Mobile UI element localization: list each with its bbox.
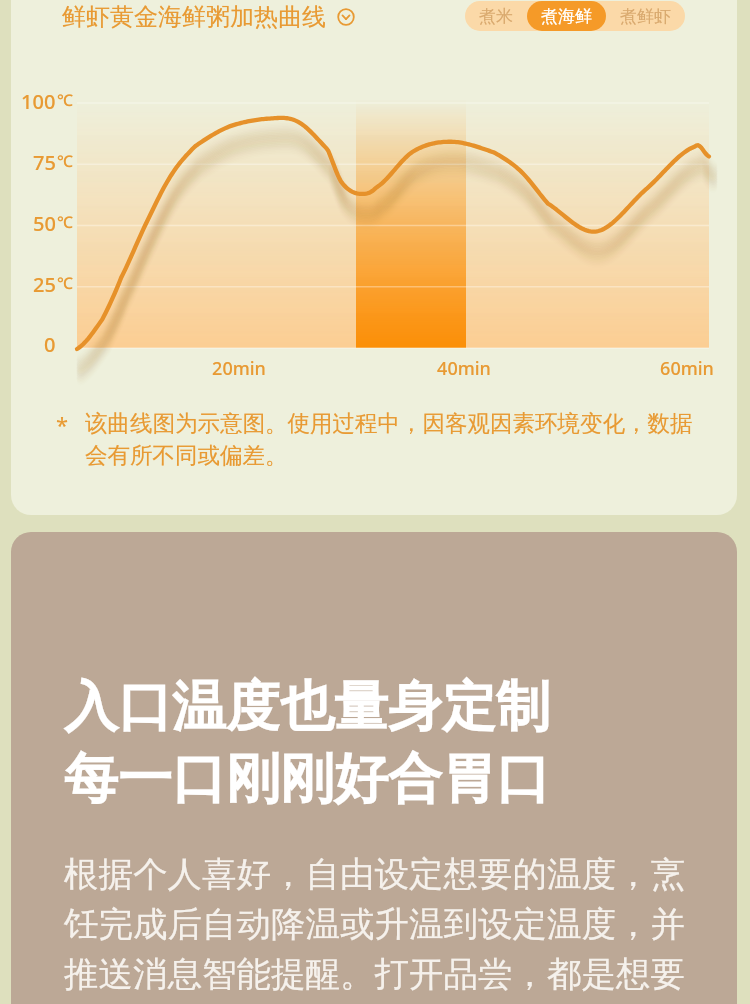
staticText: ℃ (57, 89, 73, 111)
staticText: 25 (33, 271, 56, 298)
staticText: 20min (212, 356, 266, 381)
staticText: 60min (660, 356, 714, 381)
button[interactable]: 煮米 (465, 1, 527, 31)
staticText: 50 (33, 210, 56, 237)
staticText: 该曲线图为示意图。使用过程中，因客观因素环境变化，数据 会有所不同或偏差。 (85, 409, 693, 470)
staticText: 鲜虾黄金海鲜粥加热曲线 (62, 2, 326, 32)
staticText: 煮鲜虾 (620, 6, 671, 27)
button[interactable]: 煮海鲜 (527, 1, 606, 31)
staticText: 煮海鲜 (541, 6, 592, 27)
staticText: ℃ (57, 211, 73, 233)
staticText: 40min (437, 356, 491, 381)
staticText: 煮米 (479, 6, 513, 27)
staticText: 100 (21, 88, 56, 115)
button[interactable]: 煮鲜虾 (606, 1, 685, 31)
staticText: 根据个人喜好，自由设定想要的温度，烹饪完成后自动降温或升温到设定温度，并推送消息… (64, 853, 704, 997)
button[interactable]: 鲜虾黄金海鲜粥加热曲线 (62, 2, 355, 32)
staticText: 75 (33, 149, 56, 176)
staticText: * (56, 409, 69, 439)
staticText: ℃ (57, 150, 73, 172)
staticText: ℃ (57, 272, 73, 294)
staticText: 入口温度也量身定制 每一口刚刚好合胃口 (64, 673, 550, 813)
other: Expand (337, 8, 355, 26)
staticText: 0 (44, 331, 56, 358)
